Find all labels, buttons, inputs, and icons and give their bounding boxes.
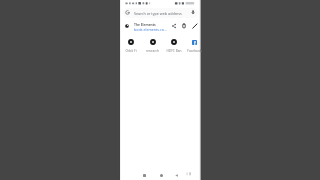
staticText: Search or type web address — [134, 11, 182, 16]
button[interactable]: Copy link — [181, 23, 187, 29]
staticText: The Elements — [134, 22, 156, 26]
staticText: book.elements.co... — [134, 27, 167, 32]
button[interactable]: Back — [171, 170, 181, 180]
button[interactable]: Share — [171, 23, 177, 29]
button[interactable]: Search or type web address — [123, 8, 198, 18]
button[interactable]: Edit query — [192, 23, 198, 29]
button[interactable]: f — [185, 39, 204, 53]
staticText: Orbit Fi — [125, 49, 137, 53]
staticText: Facebook — [187, 49, 202, 53]
button[interactable]: research — [143, 39, 162, 53]
button[interactable]: The Elements — [120, 19, 201, 32]
staticText: research — [146, 49, 159, 53]
staticText: HDFC Ban — [166, 49, 182, 53]
button[interactable]: Home — [156, 170, 166, 180]
button[interactable]: Recent apps — [139, 170, 149, 180]
other: Voice search — [190, 9, 196, 15]
other: Switch keyboard — [186, 172, 192, 178]
staticText: f — [194, 40, 196, 45]
button[interactable]: HDFC Ban — [164, 39, 183, 53]
button[interactable]: Orbit Fi — [121, 39, 140, 53]
